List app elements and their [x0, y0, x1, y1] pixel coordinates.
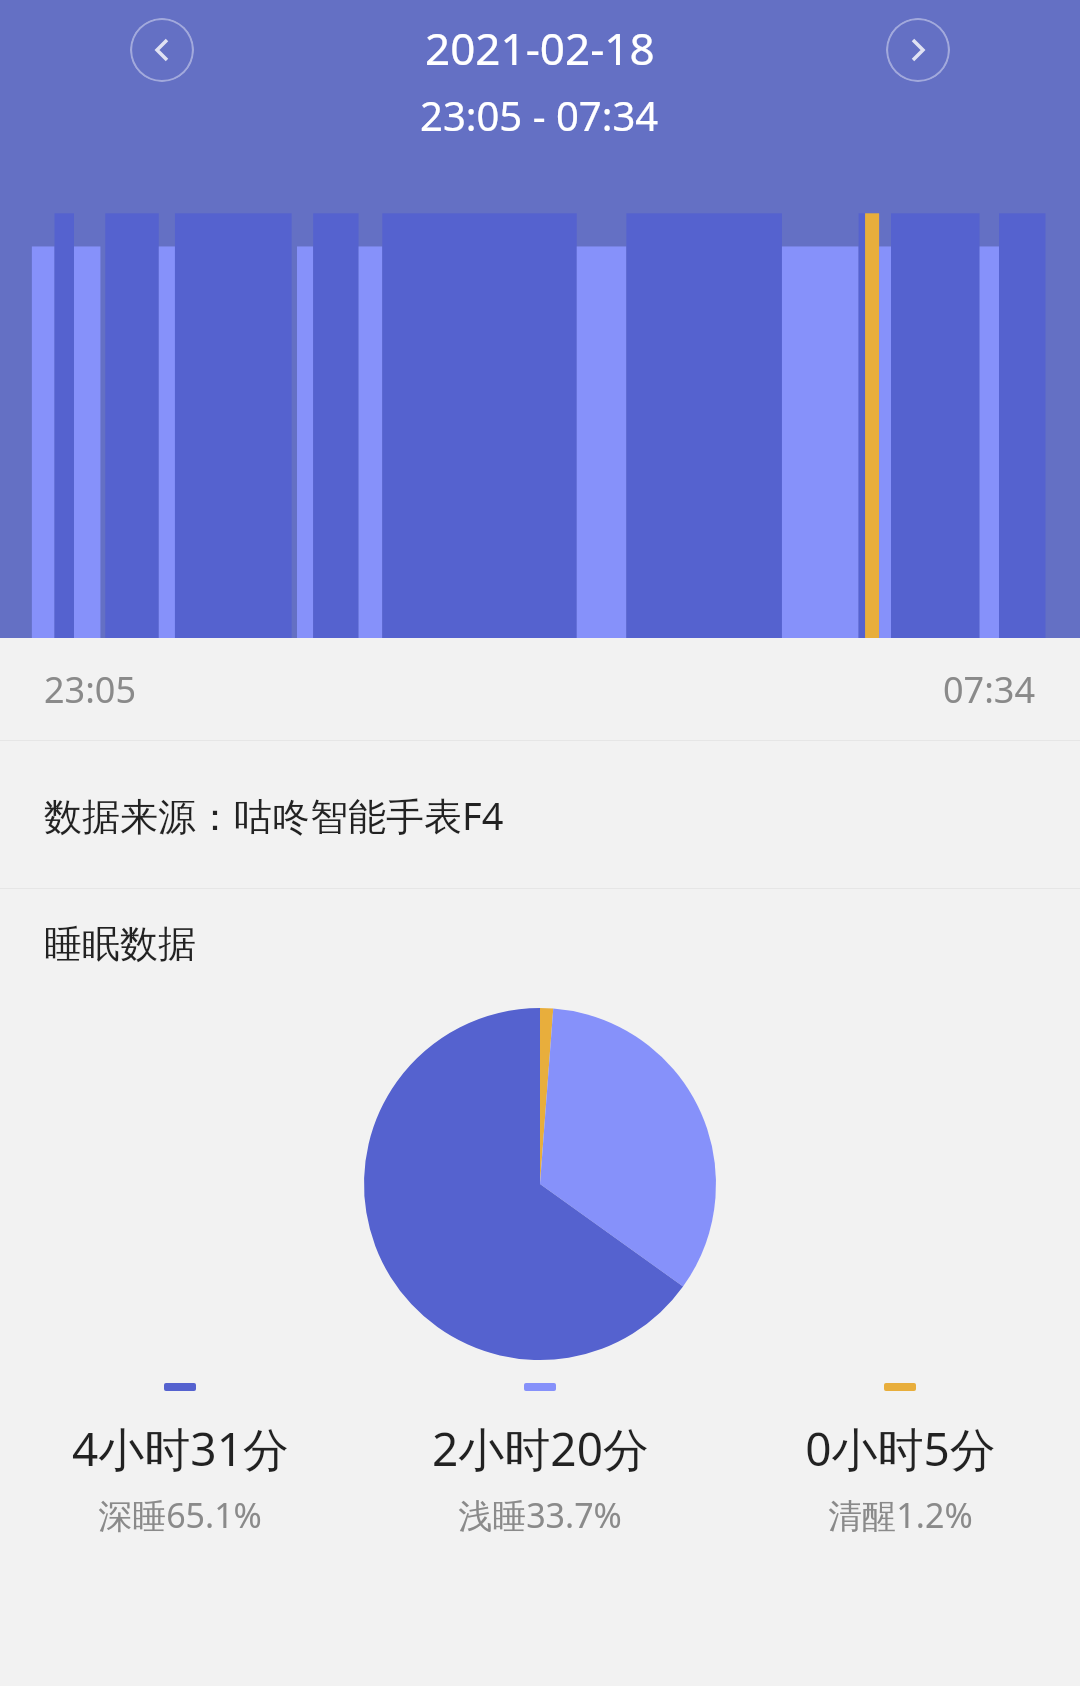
button[interactable]: Next day — [886, 18, 950, 82]
button[interactable]: 2小时20分 — [360, 1383, 720, 1538]
staticText: 4小时31分 — [72, 1417, 289, 1480]
staticText: 07:34 — [943, 665, 1036, 714]
staticText: 数据来源：咕咚智能手表F4 — [44, 789, 504, 841]
staticText: 浅睡33.7% — [458, 1492, 622, 1538]
staticText: 2小时20分 — [432, 1417, 649, 1480]
staticText: 2021-02-18 — [425, 18, 655, 78]
staticText: 23:05 — [44, 665, 137, 714]
button[interactable]: Previous day — [130, 18, 194, 82]
staticText: 睡眠数据 — [44, 920, 196, 968]
button[interactable]: 0小时5分 — [720, 1383, 1080, 1538]
staticText: 0小时5分 — [805, 1417, 996, 1480]
staticText: 23:05 - 07:34 — [420, 88, 659, 142]
staticText: 清醒1.2% — [828, 1492, 973, 1538]
staticText: 深睡65.1% — [98, 1492, 262, 1538]
button[interactable]: 数据来源：咕咚智能手表F4 — [0, 741, 1080, 888]
button[interactable]: 4小时31分 — [0, 1383, 360, 1538]
